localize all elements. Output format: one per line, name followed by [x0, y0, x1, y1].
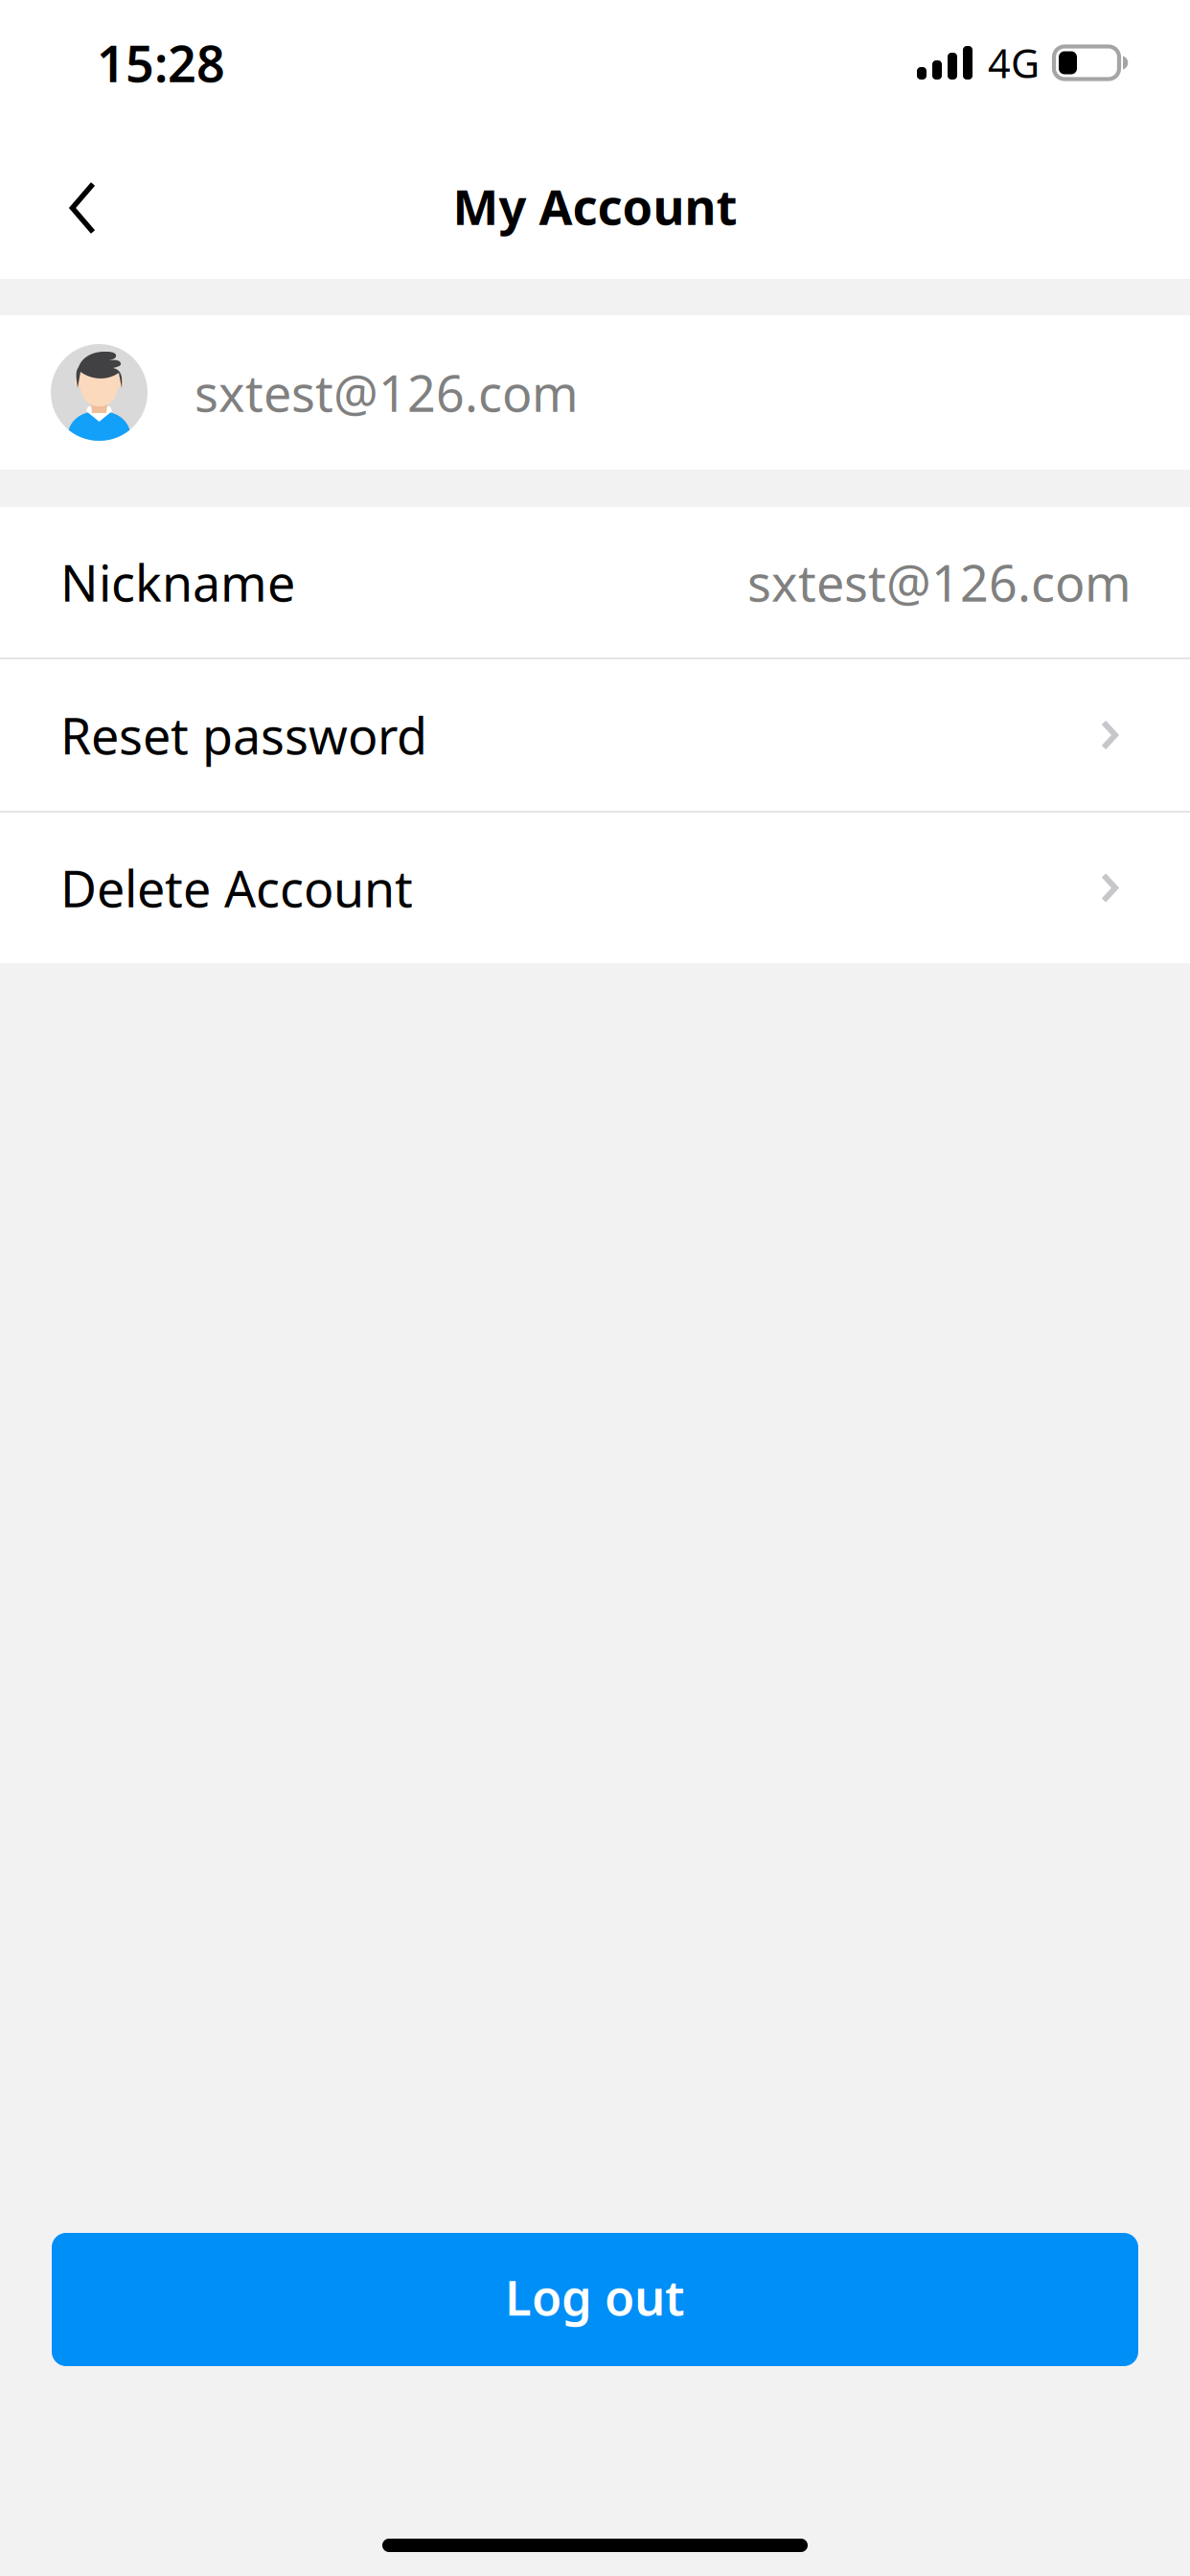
staticText: Log out [505, 2264, 685, 2329]
staticText: 15:28 [97, 30, 225, 96]
staticText: sxtest@126.com [747, 549, 1132, 615]
button[interactable]: Delete Account [0, 813, 1190, 963]
staticText: Nickname [60, 549, 295, 615]
button[interactable]: Log out [52, 2233, 1138, 2366]
staticText: Reset password [60, 702, 427, 768]
staticText: My Account [453, 174, 737, 238]
button[interactable]: Reset password [0, 659, 1190, 811]
button[interactable]: Back [0, 134, 140, 270]
staticText: sxtest@126.com [195, 359, 579, 426]
button[interactable]: sxtest@126.com [0, 315, 1190, 470]
button[interactable]: Nickname [0, 507, 1190, 657]
staticText: Delete Account [60, 855, 413, 921]
staticText: 4G [988, 37, 1040, 89]
